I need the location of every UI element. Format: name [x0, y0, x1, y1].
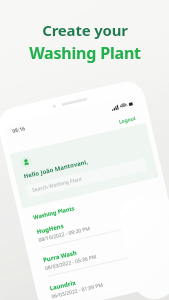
staticText: Washing Plant — [29, 42, 141, 64]
button[interactable]: HugHens — [26, 195, 169, 255]
staticText: 06/03/2022 - 01:09 PM — [51, 282, 104, 300]
button[interactable]: Laundrix — [39, 251, 169, 300]
button[interactable]: Profile — [20, 156, 33, 169]
staticText: 08:16 — [12, 125, 26, 135]
staticText: Laundrix — [49, 279, 77, 293]
button[interactable]: Logout — [109, 110, 146, 131]
staticText: HugHens — [36, 222, 65, 236]
staticText: Search Washing Plant — [31, 176, 83, 194]
staticText: Create your — [42, 20, 128, 40]
staticText: Logout — [118, 115, 136, 126]
staticText: Washing Plants — [32, 204, 76, 220]
button[interactable]: Purra Wash — [33, 223, 169, 283]
staticText: 08/10/2022 - 09:20 PM — [38, 225, 91, 244]
staticText: 08/03/2022 - 05:36 PM — [44, 253, 98, 272]
staticText: Hello João Mantovani, — [23, 158, 89, 180]
button[interactable]: Search Washing Plant — [26, 158, 148, 198]
staticText: Purra Wash — [42, 249, 78, 264]
